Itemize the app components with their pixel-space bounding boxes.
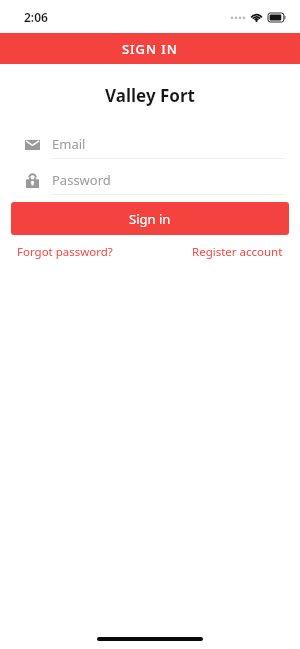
button[interactable]: Email	[0, 129, 300, 159]
staticText: Email	[52, 135, 86, 153]
staticText: Password	[52, 171, 111, 189]
other: Password	[24, 172, 40, 188]
button[interactable]: Register account	[192, 244, 283, 260]
staticText: 2:06	[24, 9, 48, 25]
staticText: SIGN IN	[122, 40, 178, 58]
other: Email	[24, 136, 40, 152]
button[interactable]: Password	[0, 165, 300, 195]
staticText: Valley Fort	[105, 84, 195, 107]
staticText: Forgot password?	[17, 244, 113, 260]
staticText: Register account	[192, 244, 283, 260]
button[interactable]: SIGN IN	[0, 33, 300, 64]
button[interactable]: Forgot password?	[17, 244, 113, 260]
button[interactable]: Sign in	[11, 202, 289, 235]
staticText: Sign in	[129, 210, 171, 228]
